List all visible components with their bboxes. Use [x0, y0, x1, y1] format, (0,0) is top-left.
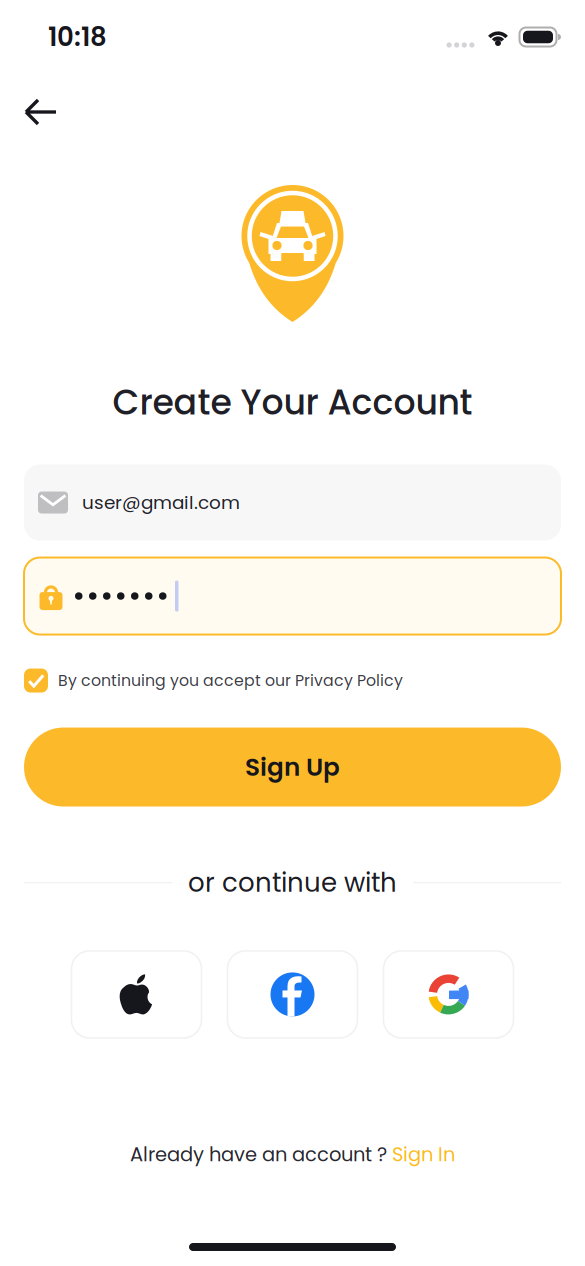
staticText: By continuing you accept our Privacy Pol… [58, 669, 403, 691]
staticText: Create Your Account [112, 378, 472, 426]
button[interactable]: Sign up with Google [383, 951, 513, 1038]
staticText: Already have an account ? [130, 1141, 392, 1168]
button[interactable]: Sign In [392, 1141, 455, 1168]
staticText: Sign In [392, 1141, 455, 1168]
staticText: Sign Up [245, 750, 340, 784]
button[interactable]: By continuing you accept our Privacy Pol… [0, 668, 585, 692]
staticText: user@gmail.com [82, 490, 240, 515]
button[interactable]: Back [0, 68, 74, 140]
staticText: or continue with [188, 864, 397, 901]
button[interactable]: Sign up with Apple [71, 951, 201, 1038]
button[interactable]: Sign Up [0, 727, 585, 806]
staticText: 10:18 [48, 19, 107, 55]
button[interactable]: Sign up with Facebook [227, 951, 357, 1038]
